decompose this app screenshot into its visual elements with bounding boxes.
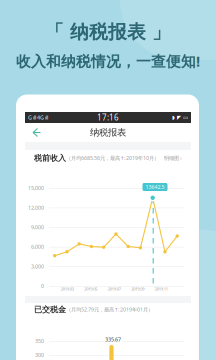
staticText: 9,000 bbox=[31, 224, 44, 231]
staticText: 2019-09 bbox=[131, 286, 144, 292]
staticText: 12,000 bbox=[28, 204, 44, 211]
staticText: 335.67 bbox=[105, 336, 121, 343]
staticText: 17:16 bbox=[97, 112, 119, 123]
staticText: 2019-07 bbox=[108, 286, 121, 292]
staticText: 税前收入 bbox=[34, 153, 66, 163]
staticText: 350 bbox=[35, 337, 44, 345]
staticText: 2019-03 bbox=[61, 286, 74, 292]
staticText: 0 bbox=[41, 282, 44, 290]
button[interactable]: 返回 bbox=[25, 123, 45, 142]
staticText: 3,000 bbox=[31, 263, 44, 270]
staticText: 2019-11 bbox=[155, 286, 168, 292]
staticText: G ıll 4G ıll bbox=[28, 114, 48, 121]
staticText: 收入和纳税情况，一查便知! bbox=[16, 51, 200, 71]
staticText: 纳税报表 bbox=[90, 127, 126, 138]
staticText: （月均52.79元，最高↑: 2019年01月） bbox=[66, 306, 153, 313]
staticText: 已交税金 bbox=[34, 305, 66, 314]
staticText: 「 纳税报表 」 bbox=[45, 20, 171, 43]
staticText: 明细图 › bbox=[164, 154, 182, 162]
staticText: ◗ ◤ ▭ bbox=[172, 114, 188, 121]
staticText: 2019-05 bbox=[84, 286, 97, 292]
staticText: （月均6685.56元，最高↑: 2019年10月） bbox=[66, 154, 159, 162]
staticText: 6,000 bbox=[31, 243, 44, 250]
button[interactable]: 明细图 › bbox=[164, 154, 182, 162]
staticText: 13642.5 bbox=[145, 183, 164, 191]
staticText: 300 bbox=[35, 351, 44, 359]
staticText: 15,000 bbox=[28, 184, 44, 192]
